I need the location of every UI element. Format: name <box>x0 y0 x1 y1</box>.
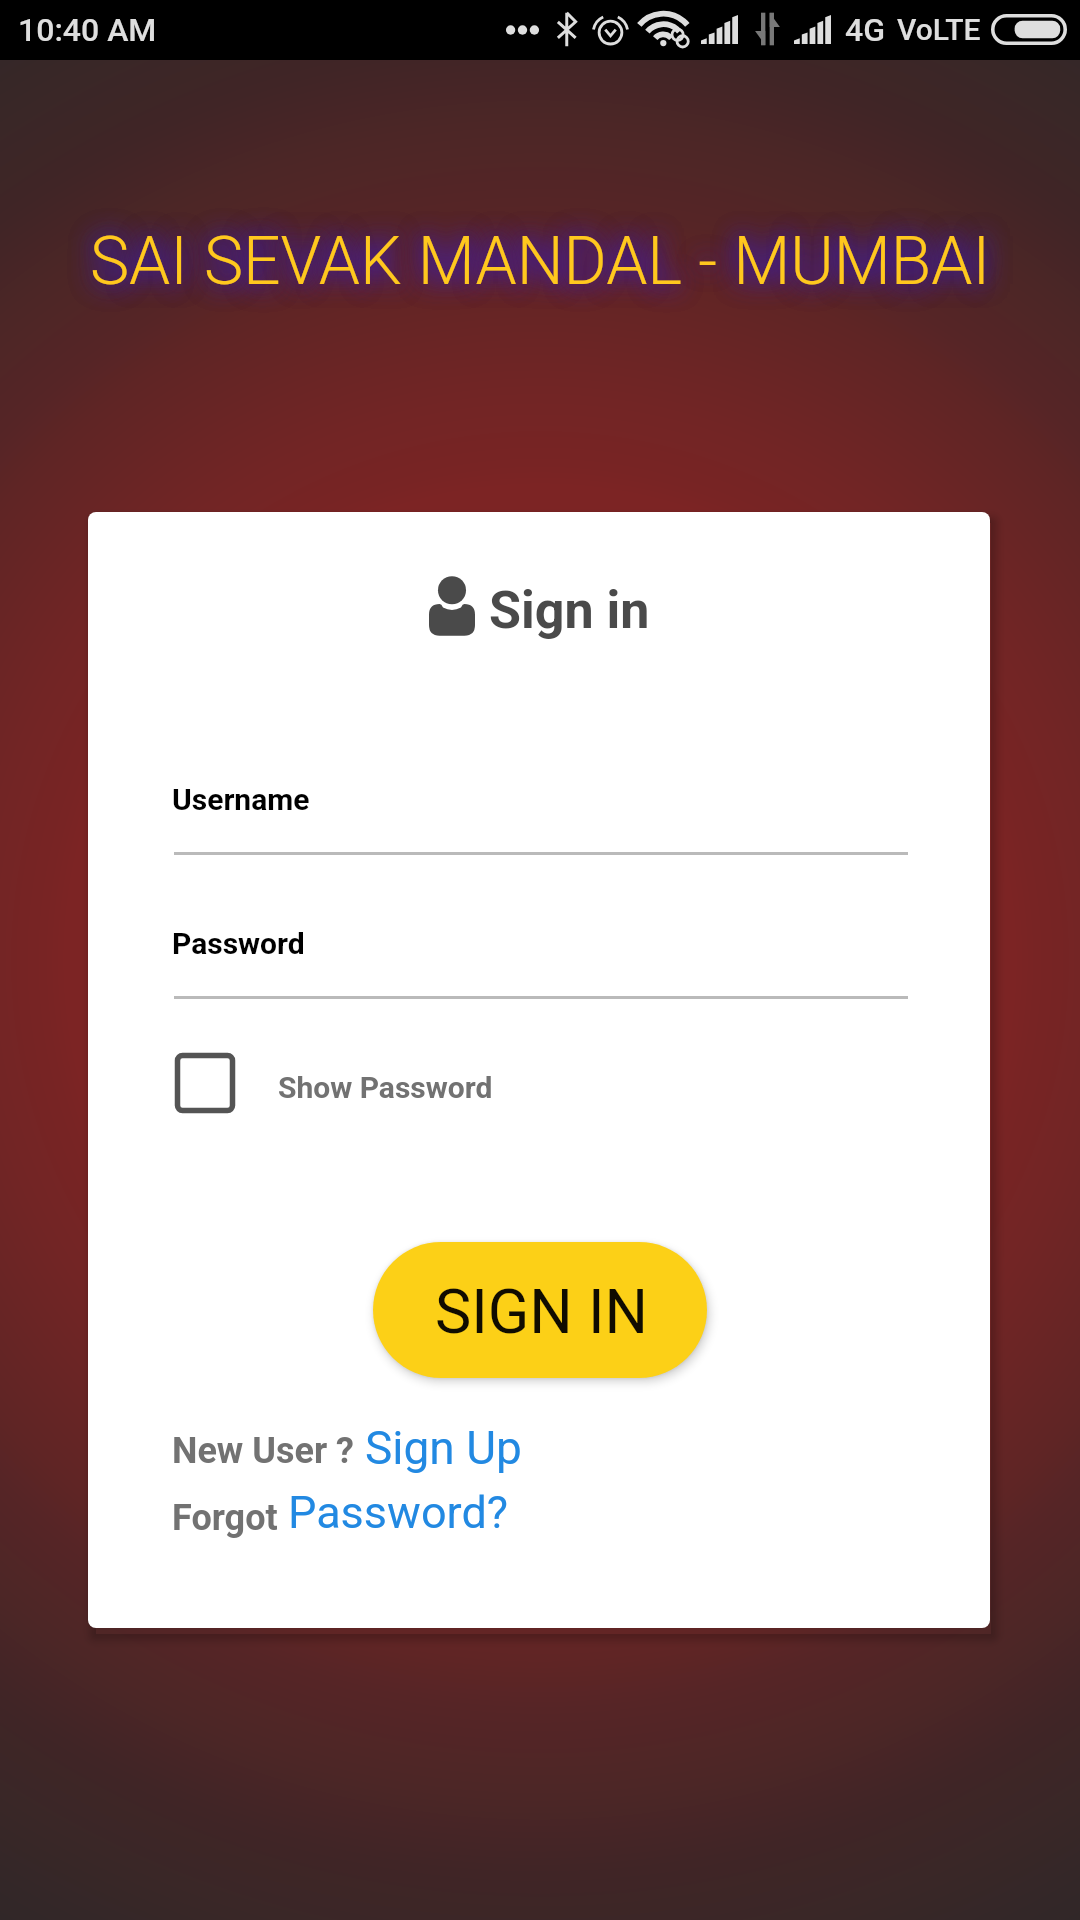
staticText: SIGN IN <box>435 1276 649 1347</box>
button[interactable]: Show Password <box>175 1048 493 1118</box>
staticText: 4G <box>845 11 885 49</box>
staticText: SAI SEVAK MANDAL - MUMBAI <box>0 223 1080 300</box>
staticText: Sign in <box>489 580 650 641</box>
button[interactable]: SIGN IN <box>373 1242 707 1378</box>
staticText: Password? <box>288 1486 509 1539</box>
staticText: SAI SEVAK MANDAL - MUMBAI <box>0 223 1080 300</box>
staticText: 10:40 AM <box>18 11 157 49</box>
staticText: New User ? <box>172 1430 354 1472</box>
button[interactable] <box>174 782 908 855</box>
staticText: Username <box>172 782 310 817</box>
other: Account <box>429 574 475 636</box>
staticText: SAI SEVAK MANDAL - MUMBAI <box>0 223 1080 300</box>
button[interactable]: New User ? <box>172 1415 511 1483</box>
staticText: VoLTE <box>897 12 981 47</box>
staticText: Forgot <box>172 1497 278 1539</box>
button[interactable] <box>174 926 908 999</box>
button[interactable]: Forgot <box>172 1482 499 1550</box>
staticText: Password <box>172 926 305 961</box>
staticText: Sign Up <box>365 1421 522 1475</box>
staticText: Show Password <box>278 1070 493 1105</box>
